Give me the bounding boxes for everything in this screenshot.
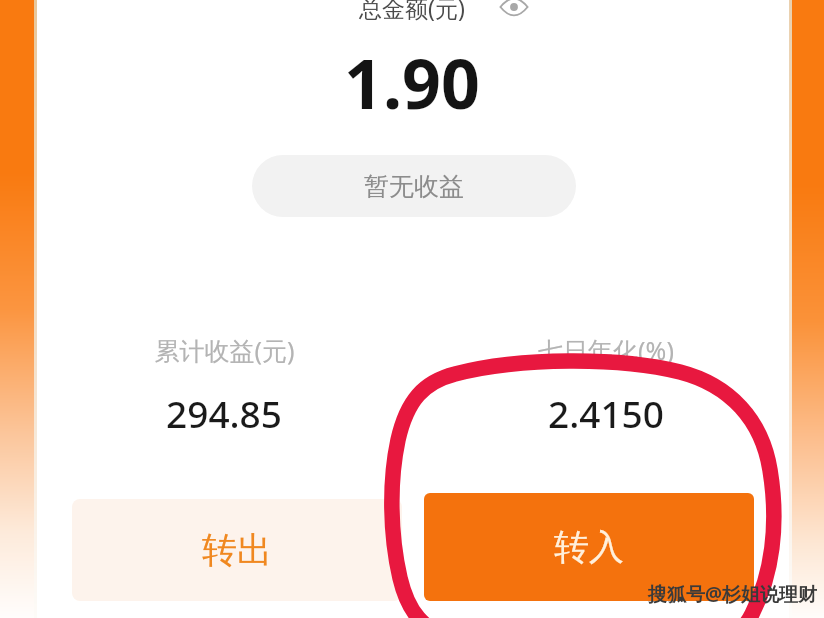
staticText: 搜狐号@杉姐说理财 [648,581,818,607]
staticText: 1.90 [344,36,480,128]
button[interactable]: Toggle amount visibility [497,0,531,24]
staticText: 七日年化(%) [538,333,674,367]
staticText: 转出 [202,528,272,572]
staticText: 2.4150 [548,388,664,436]
button[interactable]: 转入 [424,493,754,601]
staticText: 294.85 [166,388,282,436]
button[interactable]: 转出 [72,499,402,601]
staticText: 累计收益(元) [154,333,295,367]
staticText: 总金额(元) [359,0,465,23]
staticText: 暂无收益 [364,171,464,202]
staticText: 转入 [554,525,624,569]
button[interactable]: 暂无收益 [252,155,576,217]
